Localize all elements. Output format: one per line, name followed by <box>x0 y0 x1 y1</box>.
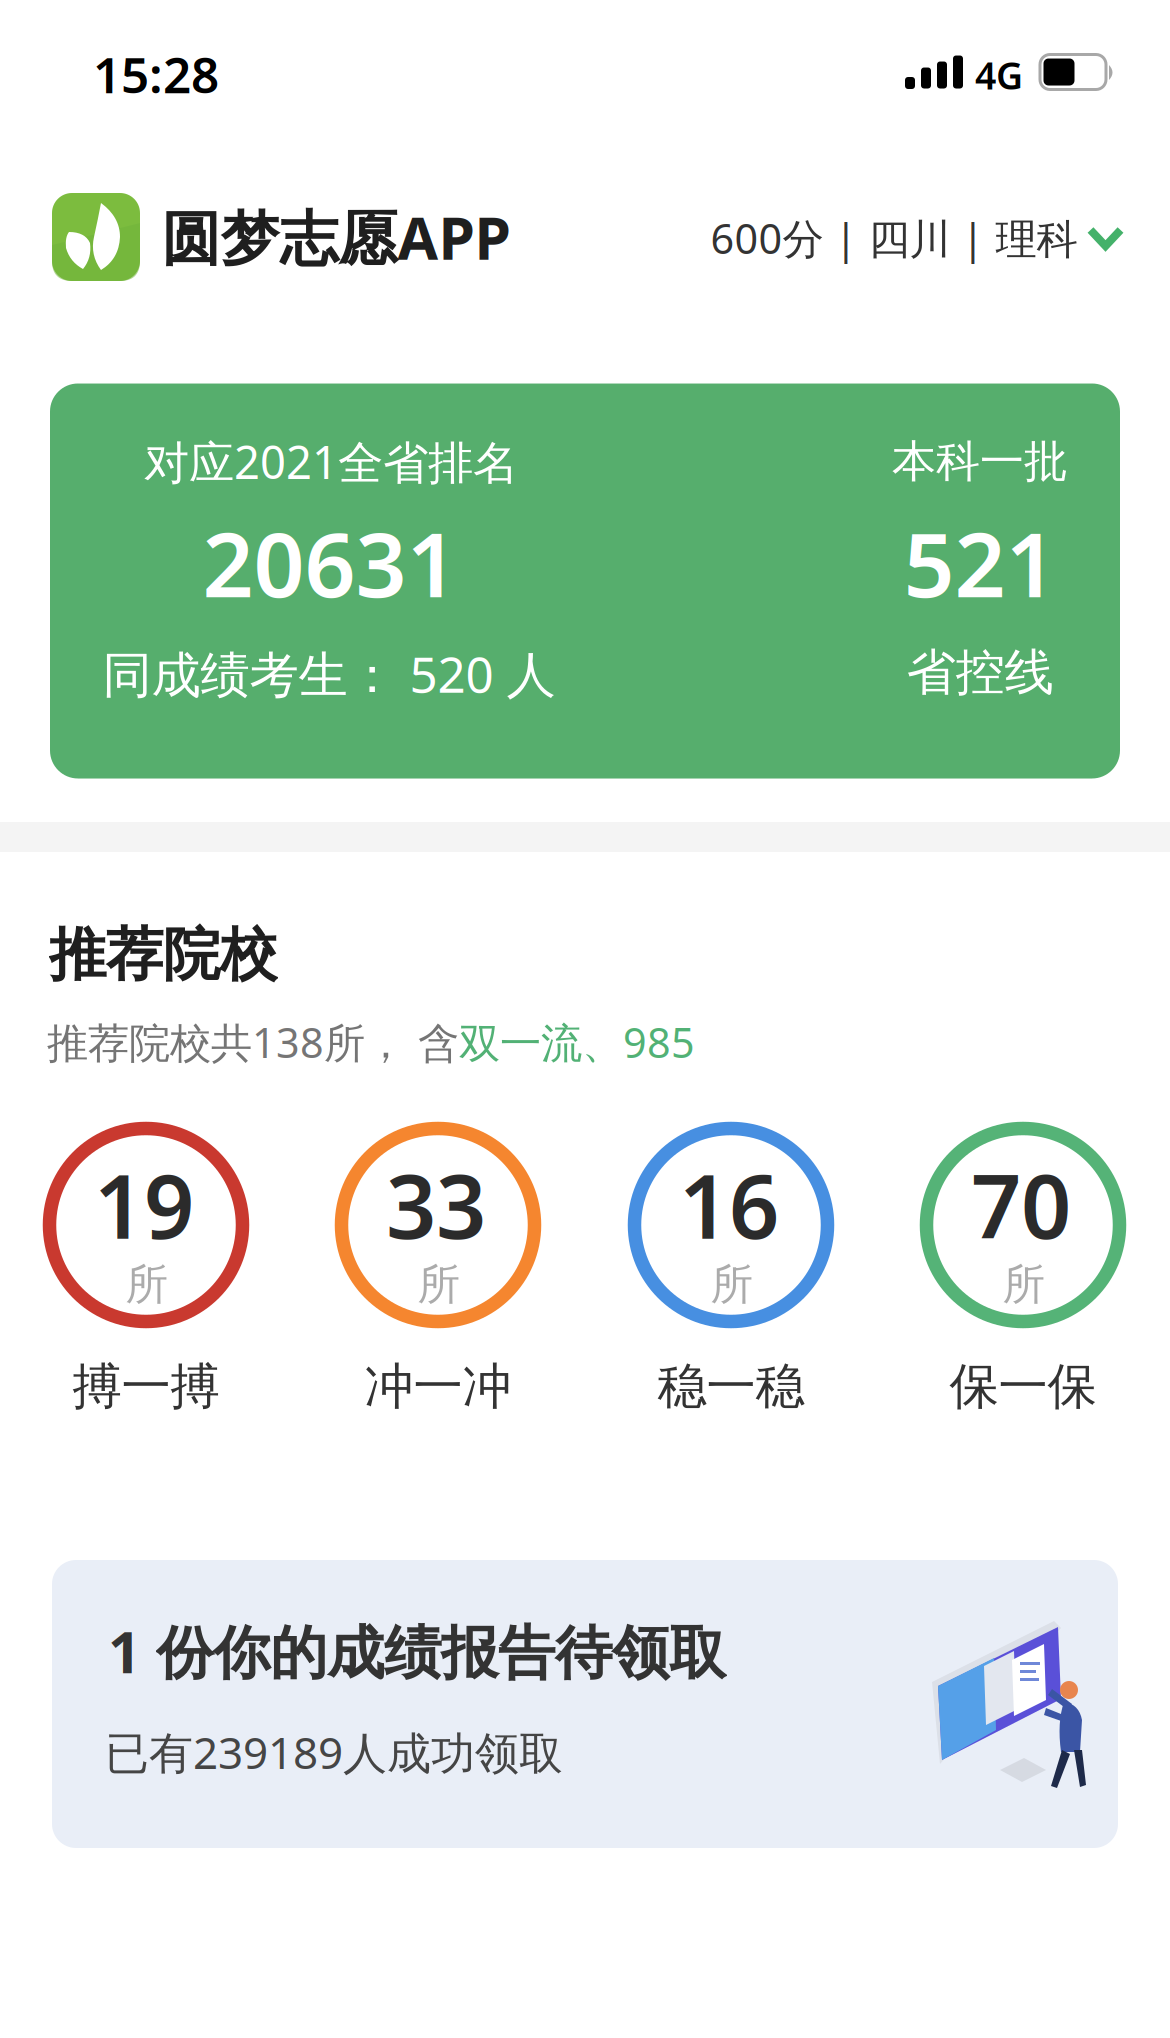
staticText: 16 <box>679 1146 779 1263</box>
staticText: 1 份你的成绩报告待领取 <box>108 1613 726 1689</box>
staticText: 搏一搏 <box>72 1356 219 1417</box>
staticText: 521 <box>903 503 1056 622</box>
staticText: 本科一批 <box>892 434 1068 488</box>
staticText: 推荐院校共138所， 含 <box>47 1015 459 1069</box>
staticText: 稳一稳 <box>657 1356 804 1417</box>
staticText: 600分 | 四川 | 理科 <box>710 211 1077 265</box>
button[interactable]: 600分 | 四川 | 理科 <box>710 211 1123 265</box>
button[interactable]: 70 <box>917 1109 1129 1419</box>
staticText: 15:28 <box>93 41 219 107</box>
staticText: 已有239189人成功领取 <box>105 1723 563 1781</box>
staticText: 所 <box>710 1258 753 1311</box>
staticText: 省控线 <box>906 642 1053 703</box>
staticText: 4G <box>975 50 1023 100</box>
staticText: 圆梦志愿APP <box>161 198 510 276</box>
staticText: 双一流、985 <box>459 1015 695 1069</box>
staticText: 所 <box>1002 1258 1045 1311</box>
staticText: 对应2021全省排名 <box>144 431 518 492</box>
staticText: 冲一冲 <box>364 1356 511 1417</box>
staticText: 33 <box>386 1146 486 1263</box>
staticText: 保一保 <box>949 1356 1096 1417</box>
button[interactable]: 对应2021全省排名 <box>50 383 1120 778</box>
button[interactable] <box>52 193 140 281</box>
staticText: 19 <box>94 1146 194 1263</box>
staticText: 70 <box>971 1146 1071 1263</box>
button[interactable]: 33 <box>332 1109 544 1419</box>
button[interactable]: 19 <box>40 1109 252 1419</box>
staticText: 同成绩考生： 520 人 <box>102 641 555 706</box>
button[interactable]: 1 份你的成绩报告待领取 <box>52 1560 1118 1848</box>
staticText: 推荐院校 <box>49 920 277 990</box>
staticText: 20631 <box>202 503 457 622</box>
staticText: 所 <box>125 1258 168 1311</box>
staticText: 所 <box>417 1258 460 1311</box>
button[interactable]: 16 <box>625 1109 837 1419</box>
